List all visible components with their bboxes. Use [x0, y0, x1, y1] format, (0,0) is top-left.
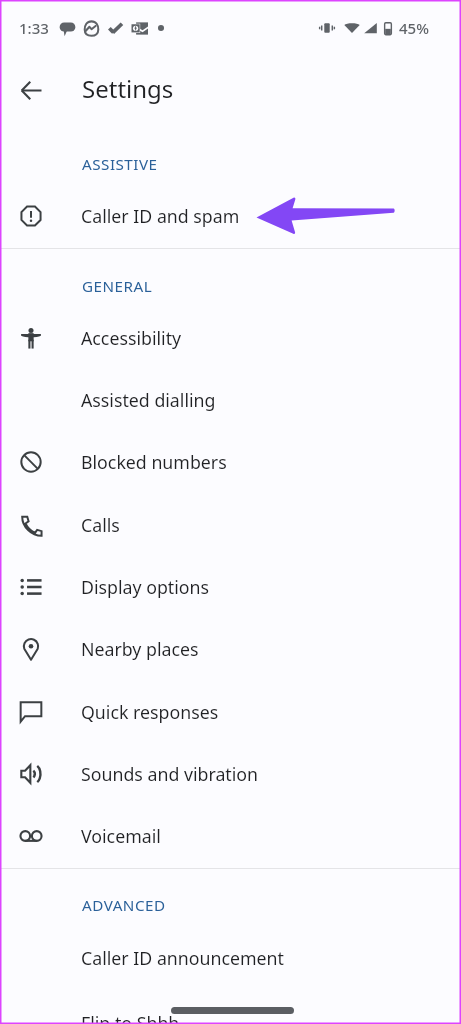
- button[interactable]: Back: [7, 66, 55, 114]
- button[interactable]: Caller ID announcement: [0, 927, 461, 989]
- staticText: Sounds and vibration: [81, 762, 259, 786]
- staticText: Nearby places: [81, 637, 199, 661]
- staticText: GENERAL: [82, 276, 153, 297]
- button[interactable]: Display options: [0, 556, 461, 618]
- staticText: Flip to Shhh: [81, 1011, 180, 1024]
- staticText: ADVANCED: [82, 895, 166, 916]
- staticText: Accessibility: [81, 326, 182, 350]
- button[interactable]: Blocked numbers: [0, 431, 461, 493]
- staticText: Caller ID announcement: [81, 946, 284, 970]
- staticText: Assisted dialling: [81, 388, 216, 412]
- button[interactable]: Quick responses: [0, 681, 461, 743]
- staticText: Caller ID and spam: [81, 204, 240, 228]
- button[interactable]: Assisted dialling: [0, 369, 461, 431]
- button[interactable]: Accessibility: [0, 307, 461, 369]
- staticText: Blocked numbers: [81, 450, 227, 474]
- staticText: Display options: [81, 575, 210, 599]
- staticText: 1:33: [19, 18, 49, 38]
- button[interactable]: Caller ID and spam: [0, 185, 461, 247]
- button[interactable]: Nearby places: [0, 618, 461, 680]
- button[interactable]: Voicemail: [0, 805, 461, 867]
- staticText: Quick responses: [81, 700, 219, 724]
- staticText: Voicemail: [81, 824, 161, 848]
- staticText: Settings: [82, 72, 174, 105]
- staticText: ASSISTIVE: [82, 154, 158, 175]
- button[interactable]: Calls: [0, 494, 461, 556]
- button[interactable]: Sounds and vibration: [0, 743, 461, 805]
- staticText: 45%: [399, 18, 429, 38]
- button[interactable]: Flip to Shhh: [0, 992, 461, 1024]
- staticText: Calls: [81, 513, 120, 537]
